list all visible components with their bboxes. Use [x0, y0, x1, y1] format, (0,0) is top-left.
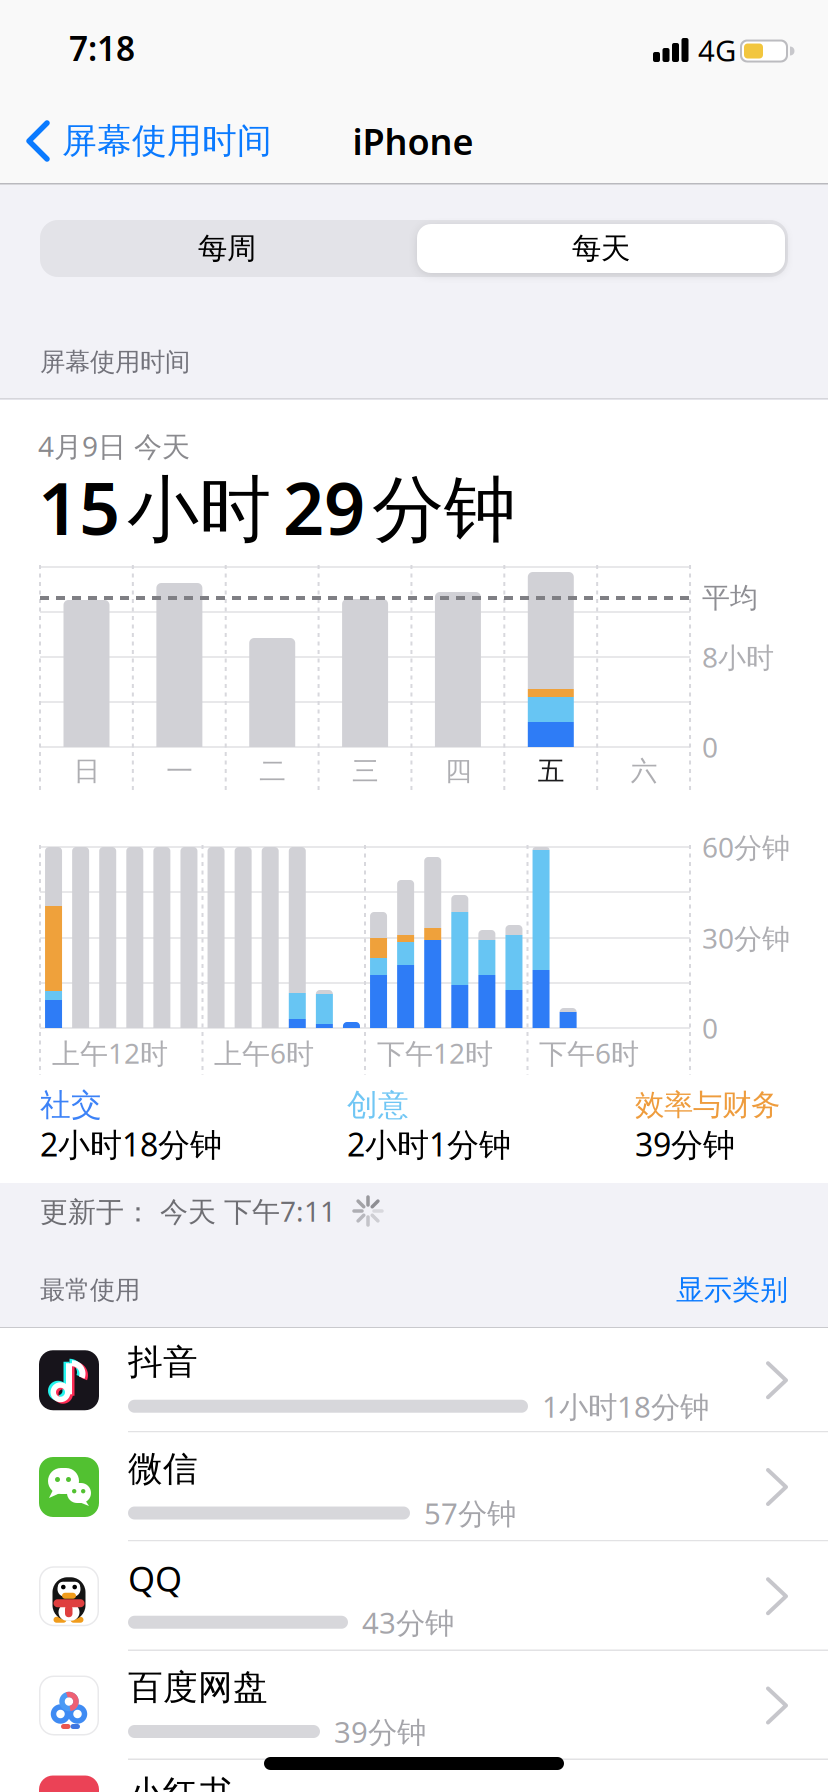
button[interactable]: 屏幕使用时间	[18, 112, 338, 170]
staticText: 每天	[572, 230, 630, 266]
staticText: 五	[538, 755, 565, 787]
staticText: 上午6时	[214, 1034, 314, 1072]
staticText: 上午12时	[52, 1034, 168, 1072]
staticText: 8小时	[702, 638, 774, 676]
staticText: 二	[259, 755, 286, 787]
staticText: 小红书	[128, 1772, 233, 1792]
button[interactable]: 百度网盘	[0, 1651, 828, 1760]
staticText: 30分钟	[702, 919, 790, 957]
button[interactable]: 显示类别	[628, 1265, 788, 1315]
staticText: 抖音	[128, 1341, 198, 1384]
staticText: 2小时18分钟	[40, 1123, 222, 1165]
button[interactable]	[417, 224, 785, 273]
staticText: 微信	[128, 1448, 198, 1490]
button[interactable]: 微信	[0, 1432, 828, 1541]
staticText: 三	[352, 755, 379, 787]
button[interactable]: 小红书	[0, 1760, 828, 1792]
staticText: 39分钟	[334, 1712, 426, 1751]
staticText: 每周	[198, 230, 256, 266]
staticText: 下午6时	[539, 1034, 639, 1072]
button[interactable]: 每周	[40, 220, 414, 277]
staticText: 屏幕使用时间	[40, 346, 190, 377]
staticText: 社交	[40, 1086, 102, 1124]
staticText: 百度网盘	[128, 1666, 268, 1709]
staticText: 57分钟	[424, 1493, 516, 1532]
button[interactable]: QQ	[0, 1541, 828, 1651]
staticText: 1小时18分钟	[542, 1387, 709, 1426]
staticText: 0	[702, 728, 718, 766]
staticText: QQ	[128, 1555, 182, 1601]
staticText: 显示类别	[676, 1273, 788, 1307]
button[interactable]: 每天	[414, 220, 788, 277]
staticText: 60分钟	[702, 828, 790, 866]
staticText: 2小时1分钟	[347, 1123, 511, 1165]
staticText: 4月9日 今天	[38, 427, 190, 465]
staticText: 43分钟	[362, 1603, 454, 1642]
staticText: 日	[73, 755, 100, 787]
staticText: 效率与财务	[635, 1087, 780, 1123]
staticText: 创意	[347, 1086, 409, 1124]
staticText: 屏幕使用时间	[62, 120, 272, 162]
staticText: 15 小时 29 分钟	[38, 459, 516, 555]
staticText: 四	[445, 755, 472, 787]
staticText: 更新于： 今天 下午7:11	[40, 1192, 336, 1230]
staticText: 39分钟	[635, 1123, 735, 1165]
button[interactable]: 抖音	[0, 1328, 828, 1432]
staticText: 一	[166, 755, 193, 787]
staticText: iPhone	[352, 117, 473, 165]
staticText: 7:18	[69, 26, 135, 70]
staticText: 平均	[702, 581, 758, 615]
staticText: 最常使用	[40, 1274, 140, 1305]
staticText: 六	[631, 755, 658, 787]
staticText: 0	[702, 1009, 718, 1047]
staticText: 下午12时	[377, 1034, 493, 1072]
staticText: 4G	[698, 30, 736, 69]
